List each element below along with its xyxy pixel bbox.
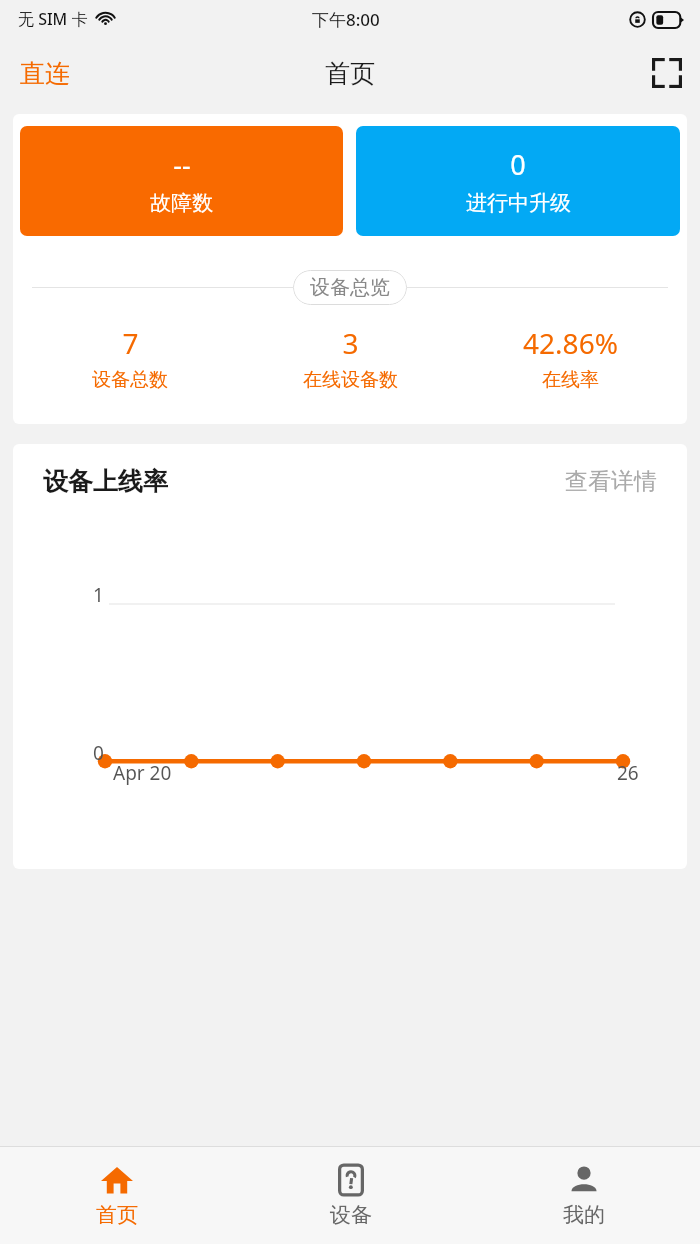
staticText: 故障数 [150, 190, 213, 216]
staticText: 设备 [330, 1202, 372, 1228]
staticText: 无 SIM 卡 [18, 8, 88, 30]
staticText: 首页 [325, 58, 375, 89]
button[interactable]: 我的 [467, 1147, 700, 1244]
staticText: 1 [93, 582, 104, 608]
staticText: 设备总数 [92, 368, 168, 392]
staticText: 下午8:00 [312, 8, 380, 31]
staticText: 在线设备数 [303, 368, 398, 392]
staticText: 设备上线率 [43, 466, 168, 497]
button[interactable]: 0 [356, 126, 680, 236]
staticText: 3 [342, 324, 359, 362]
staticText: 设备总览 [310, 275, 390, 300]
staticText: 42.86% [523, 324, 618, 362]
button[interactable]: 查看详情 [565, 467, 657, 496]
button[interactable]: 7 [20, 322, 240, 394]
staticText: 0 [93, 740, 104, 766]
staticText: 在线率 [542, 368, 599, 392]
staticText: 进行中升级 [466, 190, 571, 216]
button[interactable]: 3 [240, 322, 460, 394]
button[interactable]: 首页 [0, 1147, 234, 1244]
button[interactable]: 直连 [0, 48, 90, 99]
staticText: 26 [617, 760, 639, 786]
button[interactable]: -- [20, 126, 343, 236]
button[interactable]: 42.86% [460, 322, 680, 394]
staticText: Apr 20 [113, 760, 172, 786]
staticText: 直连 [20, 58, 70, 89]
staticText: -- [173, 146, 191, 183]
staticText: 首页 [96, 1202, 138, 1228]
staticText: 0 [510, 146, 526, 183]
button[interactable]: 设备 [234, 1147, 467, 1244]
staticText: 我的 [563, 1202, 605, 1228]
button[interactable]: Scan [634, 46, 700, 100]
staticText: 7 [122, 324, 139, 362]
staticText: 查看详情 [565, 467, 657, 496]
